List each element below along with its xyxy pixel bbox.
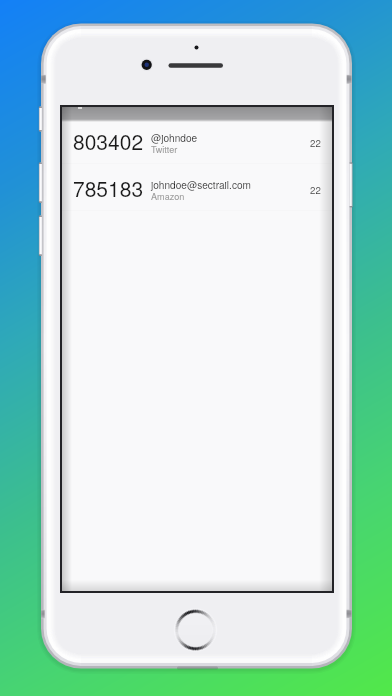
- staticText: 22: [310, 136, 321, 150]
- button[interactable]: 803402: [62, 117, 332, 164]
- button[interactable]: 785183: [62, 164, 332, 211]
- staticText: 785183: [73, 173, 144, 203]
- staticText: Amazon: [151, 190, 185, 203]
- staticText: @johndoe: [151, 130, 198, 144]
- staticText: johndoe@sectrail.com: [151, 177, 251, 191]
- staticText: 803402: [73, 126, 144, 156]
- staticText: 22: [310, 183, 321, 197]
- staticText: Twitter: [151, 143, 178, 156]
